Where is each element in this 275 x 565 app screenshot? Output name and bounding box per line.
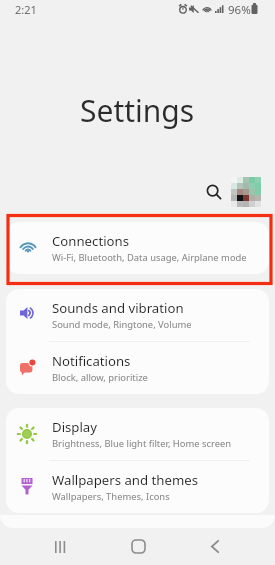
button[interactable]: Wallpapers and themes	[6, 461, 269, 513]
staticText: Notifications	[52, 352, 131, 370]
staticText: Sounds and vibration	[52, 299, 184, 317]
staticText: Wallpapers, Themes, Icons	[52, 490, 170, 503]
button[interactable]: Sounds and vibration	[6, 289, 269, 341]
button[interactable]: Display	[6, 408, 269, 460]
button[interactable]: Home	[118, 530, 158, 562]
staticText: 96%	[228, 2, 251, 18]
button[interactable]: Back	[195, 530, 235, 562]
staticText: Sound mode, Ringtone, Volume	[52, 318, 192, 331]
staticText: Connections	[52, 232, 129, 250]
button[interactable]: Connections	[6, 222, 269, 274]
staticText: Display	[52, 418, 97, 436]
staticText: 2:21	[15, 2, 37, 17]
staticText: Settings	[80, 90, 195, 130]
staticText: Wallpapers and themes	[52, 471, 198, 489]
button[interactable]: Account	[229, 176, 259, 206]
button[interactable]: Search	[200, 178, 227, 205]
button[interactable]: Recent apps	[40, 531, 80, 563]
button[interactable]: Notifications	[6, 342, 269, 394]
staticText: Block, allow, prioritize	[52, 371, 148, 384]
staticText: Wi-Fi, Bluetooth, Data usage, Airplane m…	[52, 251, 247, 264]
staticText: Brightness, Blue light filter, Home scre…	[52, 437, 232, 450]
